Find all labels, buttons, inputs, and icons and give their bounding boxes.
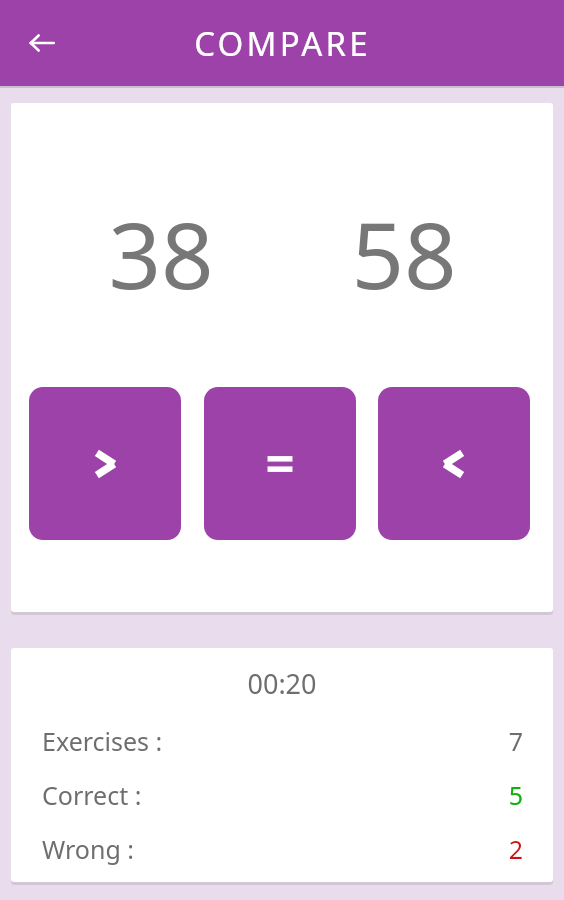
button[interactable]: Greater than — [29, 387, 181, 540]
staticText: 00:20 — [11, 665, 553, 702]
staticText: COMPARE — [194, 21, 371, 66]
staticText: 38 — [108, 191, 214, 316]
staticText: 2 — [508, 832, 523, 865]
button[interactable]: Less than — [378, 387, 530, 540]
staticText: Wrong : — [42, 832, 134, 865]
button[interactable]: Equal to — [204, 387, 356, 540]
button[interactable]: Back — [18, 19, 66, 67]
staticText: Correct : — [42, 778, 142, 811]
staticText: 7 — [508, 724, 523, 757]
staticText: 5 — [508, 778, 523, 811]
staticText: Exercises : — [42, 724, 163, 757]
staticText: 58 — [351, 191, 457, 316]
